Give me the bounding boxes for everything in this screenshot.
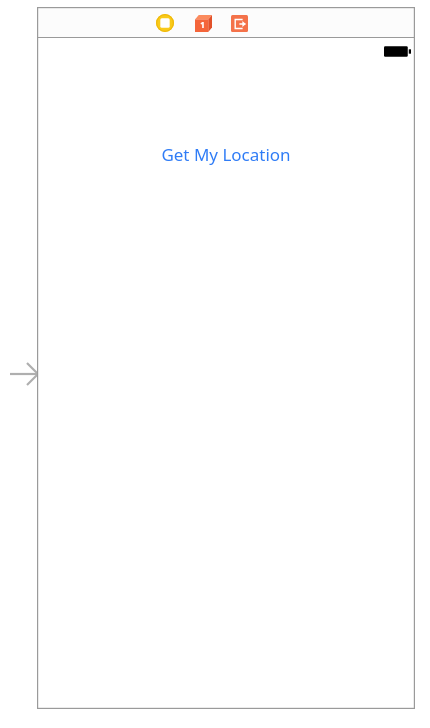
staticText: Get My Location (161, 143, 291, 166)
other: Battery (384, 45, 411, 58)
button[interactable]: Stop (152, 10, 178, 36)
button[interactable]: Package (190, 10, 216, 36)
button[interactable]: Get My Location (153, 139, 299, 170)
button[interactable]: Export (226, 10, 252, 36)
staticText: 1 (200, 19, 205, 30)
